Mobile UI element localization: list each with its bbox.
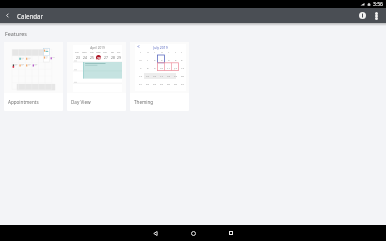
staticText: 2 <box>154 58 156 61</box>
staticText: Calendar <box>17 12 44 20</box>
staticText: 15 <box>146 74 149 77</box>
staticText: 21 <box>139 82 142 85</box>
staticText: WED <box>96 51 101 54</box>
staticText: F <box>175 51 177 54</box>
staticText: 6 <box>181 58 183 61</box>
staticText: 19 <box>174 74 177 77</box>
staticText: T <box>168 51 170 54</box>
staticText: 30 <box>139 58 142 61</box>
staticText: THU <box>103 51 108 54</box>
staticText: 3 <box>161 58 163 61</box>
staticText: 13 <box>181 66 184 69</box>
staticText: 29 <box>117 55 121 59</box>
staticText: SAT <box>117 51 121 54</box>
staticText: April 2019 <box>73 46 122 50</box>
staticText: 11 <box>167 66 170 69</box>
staticText: July 2019 <box>135 45 186 50</box>
staticText: 7 <box>140 66 142 69</box>
staticText: M <box>147 51 149 54</box>
staticText: Day View <box>71 99 91 105</box>
staticText: T <box>154 51 156 54</box>
button[interactable]: July 2019 <box>130 42 189 111</box>
button[interactable]: April 2019 <box>67 42 126 111</box>
staticText: 12 <box>174 66 177 69</box>
staticText: 8 <box>147 66 149 69</box>
staticText: 23 <box>76 55 80 59</box>
staticText: MON <box>82 51 87 54</box>
staticText: 14 <box>139 74 142 77</box>
staticText: 18 <box>167 74 170 77</box>
staticText: Features <box>5 30 27 37</box>
staticText: 26 <box>97 56 101 60</box>
staticText: S <box>140 51 142 54</box>
button[interactable]: Home <box>185 225 201 241</box>
staticText: 20 <box>181 74 184 77</box>
staticText: 16 <box>153 74 156 77</box>
button[interactable]: More options <box>370 9 383 22</box>
staticText: FRI <box>111 51 114 54</box>
staticText: 3:56 <box>373 1 383 8</box>
staticText: 26 <box>174 82 177 85</box>
staticText: 27 <box>104 55 108 59</box>
staticText: 9 <box>154 66 156 69</box>
staticText: 5 <box>175 58 177 61</box>
staticText: 25 <box>167 82 170 85</box>
staticText: W <box>161 51 163 54</box>
button[interactable]: Back <box>147 225 163 241</box>
staticText: S <box>181 51 183 54</box>
staticText: 28 <box>111 55 115 59</box>
button[interactable]: Navigate up <box>0 8 15 23</box>
staticText: 10 <box>160 66 163 69</box>
staticText: TUE <box>90 51 94 54</box>
button[interactable]: Recent apps <box>223 225 239 241</box>
staticText: 1 <box>147 58 149 61</box>
staticText: SUN <box>75 51 80 54</box>
staticText: 25 <box>90 55 94 59</box>
staticText: 24 <box>160 82 163 85</box>
staticText: 4 <box>168 58 170 61</box>
staticText: 17 <box>160 74 163 77</box>
staticText: Appointments <box>8 99 39 105</box>
staticText: 27 <box>181 82 184 85</box>
staticText: 22 <box>146 82 149 85</box>
button[interactable]: Toggle dark theme <box>355 8 370 23</box>
staticText: 24 <box>83 55 87 59</box>
button[interactable]: Appointments <box>4 42 63 111</box>
staticText: 23 <box>153 82 156 85</box>
staticText: Theming <box>134 99 154 105</box>
